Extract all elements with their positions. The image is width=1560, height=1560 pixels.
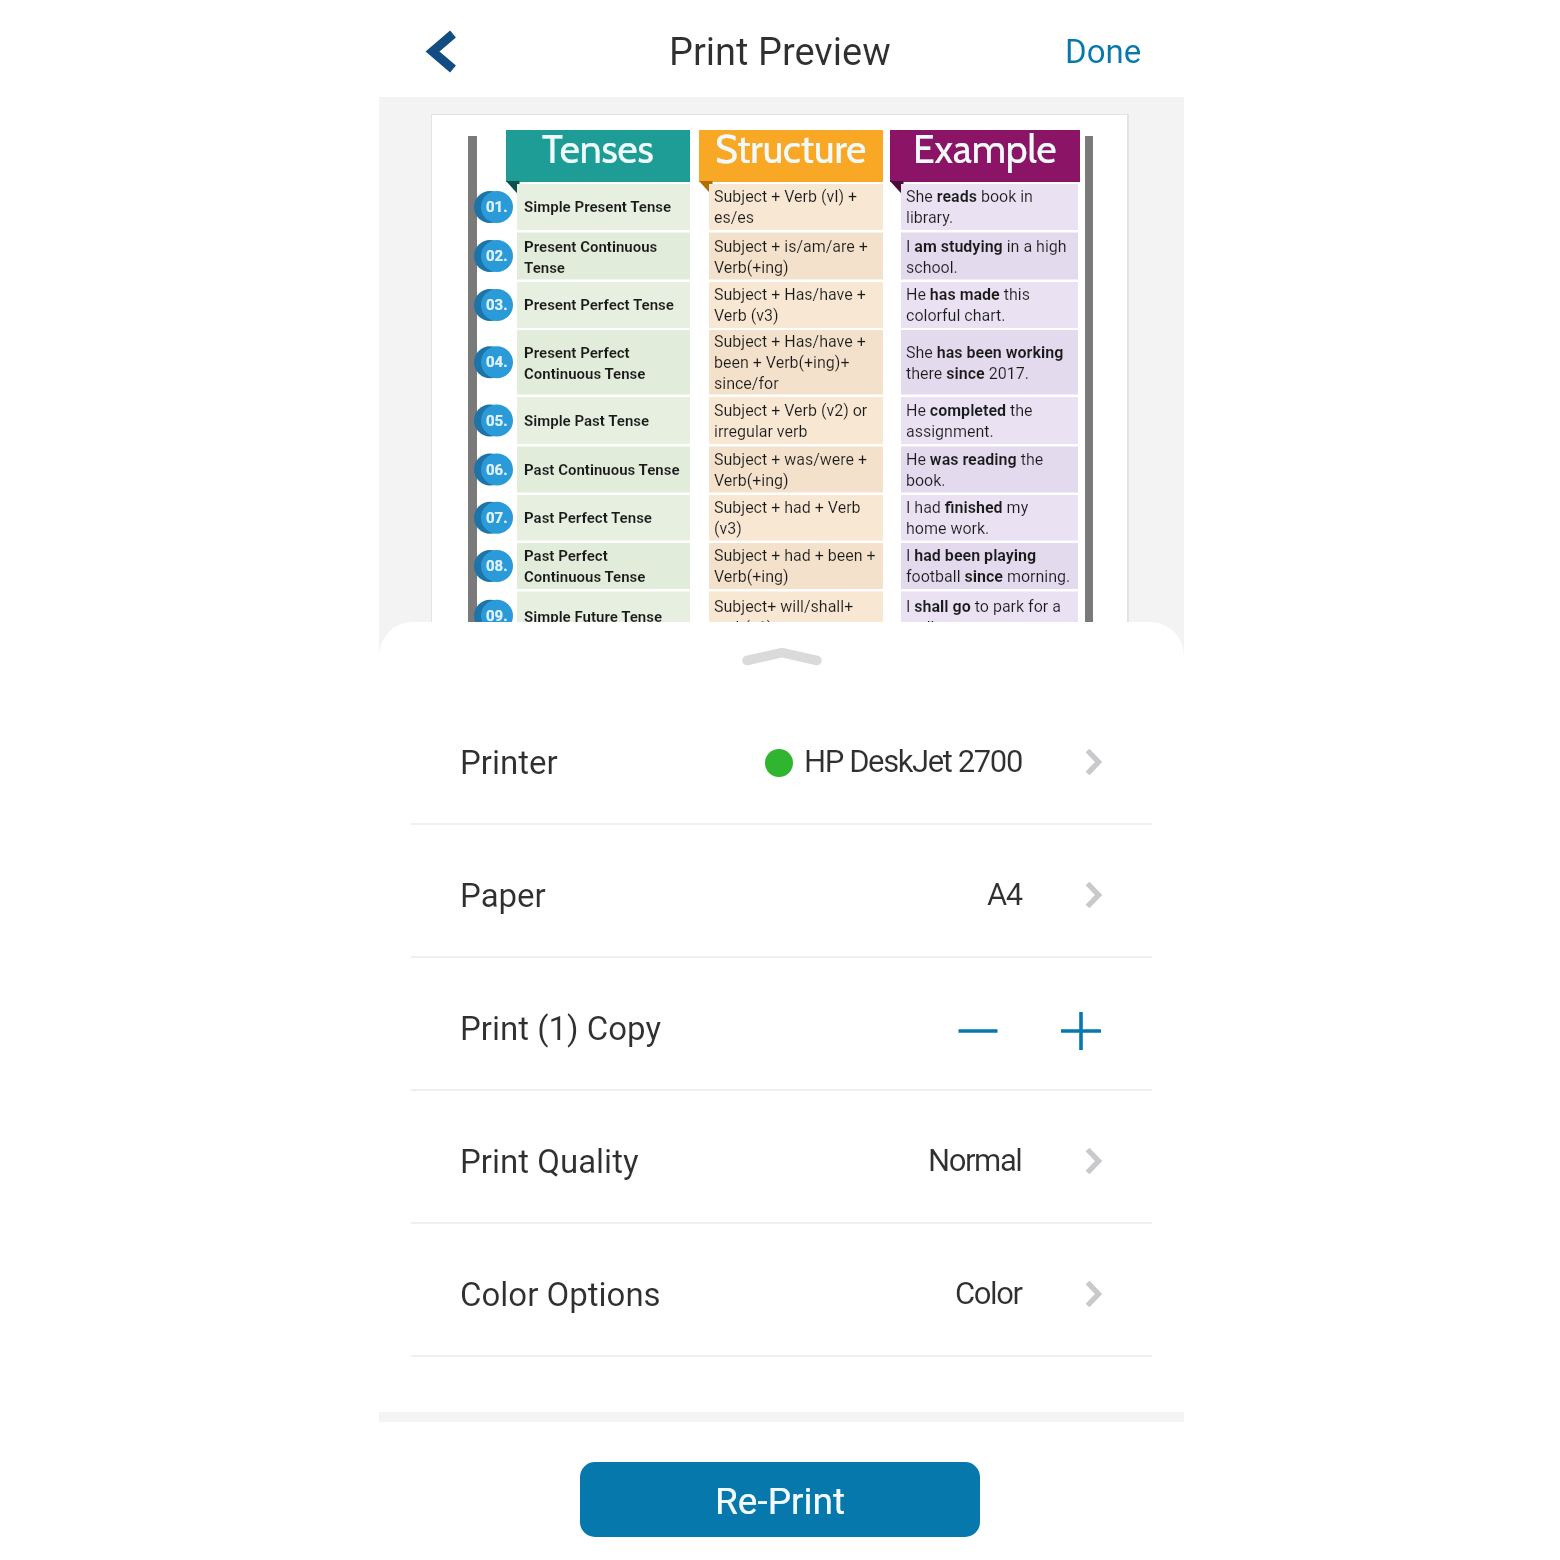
staticText: 05. (486, 412, 508, 430)
staticText: Subject + Has/have + been + Verb(+ing)+ … (714, 332, 866, 393)
staticText: Subject + had + Verb (v3) (714, 498, 861, 538)
staticText: Re-Print (715, 1480, 846, 1523)
staticText: Print (1) Copy (460, 1009, 662, 1048)
button[interactable]: Back (409, 15, 475, 81)
staticText: Paper (460, 876, 546, 915)
staticText: I had finished my home work. (906, 498, 1029, 538)
staticText: Present Perfect Tense (524, 296, 674, 314)
staticText: I shall go to park for a walk. (906, 597, 1061, 637)
staticText: Simple Future Tense (524, 608, 663, 626)
staticText: 01. (486, 198, 508, 216)
staticText: Present Perfect Continuous Tense (524, 344, 646, 382)
staticText: Simple Present Tense (524, 198, 672, 216)
staticText: I am studying in a high school. (906, 237, 1067, 277)
staticText: He has made this colorful chart. (906, 285, 1030, 325)
staticText: Color Options (460, 1275, 661, 1314)
staticText: Past Perfect Continuous Tense (524, 547, 646, 585)
staticText: 04. (486, 353, 508, 371)
button[interactable]: Print Quality (379, 1091, 1184, 1222)
staticText: Subject + Verb (vI) + es/es (714, 187, 858, 227)
staticText: A4 (987, 876, 1022, 912)
staticText: She has been working there since 2017. (906, 343, 1064, 383)
staticText: Done (1065, 32, 1142, 71)
button[interactable]: Re-Print (580, 1462, 980, 1537)
staticText: 09. (486, 607, 508, 625)
staticText: Print Preview (669, 30, 891, 75)
staticText: Tenses (542, 125, 654, 172)
staticText: I had been playing football since mornin… (906, 546, 1071, 586)
staticText: Normal (928, 1142, 1022, 1178)
staticText: Color (955, 1275, 1022, 1311)
staticText: 06. (486, 461, 508, 479)
button[interactable]: Paper (379, 825, 1184, 956)
button[interactable]: Done (1043, 21, 1164, 82)
staticText: Present Continuous Tense (524, 238, 658, 276)
staticText: Example (913, 125, 1057, 172)
staticText: Simple Past Tense (524, 412, 650, 430)
staticText: Past Continuous Tense (524, 461, 680, 479)
staticText: Structure (715, 125, 867, 172)
staticText: 08. (486, 557, 508, 575)
button[interactable]: Color Options (379, 1224, 1184, 1355)
staticText: 07. (486, 509, 508, 527)
button[interactable]: Printer (379, 692, 1184, 823)
staticText: HP DeskJet 2700 (804, 743, 1022, 779)
button[interactable]: Increase copies (1051, 1001, 1111, 1061)
staticText: 02. (486, 247, 508, 265)
button[interactable]: Document preview (431, 114, 1129, 636)
staticText: Print Quality (460, 1142, 639, 1181)
staticText: Subject + was/were + Verb(+ing) (714, 450, 868, 490)
staticText: 03. (486, 296, 508, 314)
staticText: Subject + had + been + Verb(+ing) (714, 546, 876, 586)
staticText: Subject + is/am/are + Verb(+ing) (714, 237, 868, 277)
staticText: He completed the assignment. (906, 401, 1033, 441)
staticText: Subject + Has/have + Verb (v3) (714, 285, 866, 325)
button[interactable]: Decrease copies (948, 1001, 1008, 1061)
staticText: Subject + Verb (v2) or irregular verb (714, 401, 868, 441)
staticText: Subject+ will/shall+ verb(v1) (714, 597, 854, 637)
staticText: He was reading the book. (906, 450, 1044, 490)
staticText: Printer (460, 743, 558, 782)
staticText: She reads book in library. (906, 187, 1033, 227)
staticText: Past Perfect Tense (524, 509, 652, 527)
